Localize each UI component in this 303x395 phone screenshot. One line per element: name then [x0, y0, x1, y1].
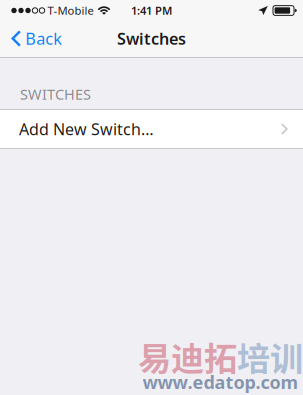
- button[interactable]: Add New Switch…: [0, 110, 303, 148]
- button[interactable]: Back: [0, 20, 72, 56]
- staticText: Switches: [117, 27, 186, 49]
- staticText: 1:41 PM: [131, 3, 172, 18]
- staticText: SWITCHES: [20, 84, 91, 104]
- staticText: 易迪拓: [138, 332, 237, 381]
- staticText: www.edatop.com: [142, 370, 298, 394]
- staticText: Add New Switch…: [19, 118, 154, 140]
- staticText: 培训: [237, 332, 303, 381]
- staticText: Back: [25, 27, 62, 50]
- staticText: T-Mobile: [47, 3, 93, 18]
